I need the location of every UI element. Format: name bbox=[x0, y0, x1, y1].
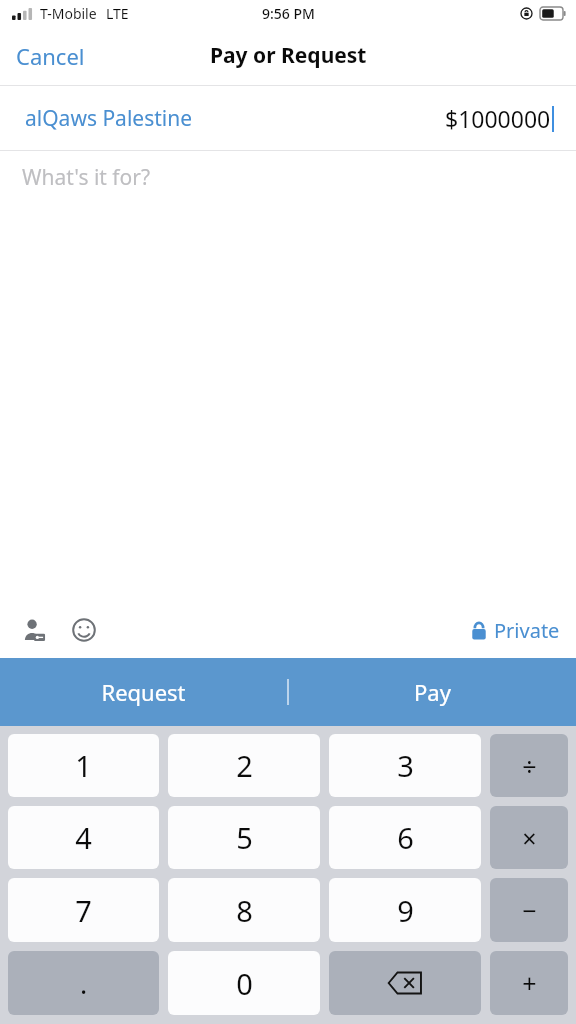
button[interactable]: 9 bbox=[329, 878, 481, 942]
staticText: 9 bbox=[397, 891, 414, 930]
staticText: LTE bbox=[106, 4, 129, 23]
staticText: 2 bbox=[236, 746, 253, 785]
button[interactable]: Add emoji bbox=[66, 612, 102, 648]
staticText: T-Mobile bbox=[40, 4, 97, 23]
staticText: 1 bbox=[75, 746, 92, 785]
staticText: 5 bbox=[236, 818, 253, 857]
staticText: × bbox=[522, 821, 537, 855]
staticText: Pay or Request bbox=[210, 41, 367, 70]
button[interactable]: Backspace bbox=[329, 951, 481, 1015]
staticText: $1000000 bbox=[445, 103, 551, 134]
button[interactable]: Cancel bbox=[0, 33, 101, 79]
button[interactable]: − bbox=[490, 878, 568, 942]
button[interactable]: Private bbox=[455, 609, 576, 652]
staticText: 9:56 PM bbox=[262, 4, 315, 23]
button[interactable]: What's it for? bbox=[0, 151, 576, 203]
staticText: ÷ bbox=[522, 749, 537, 783]
staticText: Cancel bbox=[16, 41, 85, 71]
staticText: Pay bbox=[414, 677, 451, 707]
staticText: . bbox=[80, 965, 88, 1002]
staticText: Private bbox=[494, 617, 560, 644]
button[interactable]: × bbox=[490, 806, 568, 869]
staticText: What's it for? bbox=[22, 163, 151, 192]
staticText: Request bbox=[101, 677, 186, 707]
button[interactable]: 0 bbox=[168, 951, 320, 1015]
staticText: 0 bbox=[236, 964, 253, 1003]
button[interactable]: 5 bbox=[168, 806, 320, 869]
button[interactable]: . bbox=[8, 951, 159, 1015]
button[interactable]: 7 bbox=[8, 878, 159, 942]
button[interactable]: Pay bbox=[289, 658, 576, 726]
staticText: 7 bbox=[75, 891, 92, 930]
staticText: 6 bbox=[397, 818, 414, 857]
button[interactable]: Add person bbox=[16, 612, 52, 648]
button[interactable]: 3 bbox=[329, 734, 481, 797]
staticText: 4 bbox=[75, 818, 92, 857]
button[interactable]: 2 bbox=[168, 734, 320, 797]
button[interactable]: ÷ bbox=[490, 734, 568, 797]
button[interactable]: 4 bbox=[8, 806, 159, 869]
button[interactable]: alQaws Palestine bbox=[0, 86, 576, 150]
button[interactable]: 6 bbox=[329, 806, 481, 869]
staticText: 8 bbox=[236, 891, 253, 930]
staticText: 3 bbox=[397, 746, 414, 785]
staticText: + bbox=[522, 966, 537, 1000]
staticText: alQaws Palestine bbox=[25, 104, 193, 133]
button[interactable]: 8 bbox=[168, 878, 320, 942]
button[interactable]: 1 bbox=[8, 734, 159, 797]
button[interactable]: Request bbox=[0, 658, 287, 726]
button[interactable]: + bbox=[490, 951, 568, 1015]
staticText: − bbox=[522, 893, 537, 927]
